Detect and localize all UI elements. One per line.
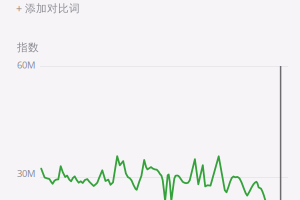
- staticText: 30M: [17, 167, 35, 180]
- staticText: 60M: [17, 59, 35, 71]
- button[interactable]: + 添加对比词: [0, 0, 300, 16]
- staticText: 指数: [17, 41, 39, 54]
- staticText: + 添加对比词: [16, 1, 80, 15]
